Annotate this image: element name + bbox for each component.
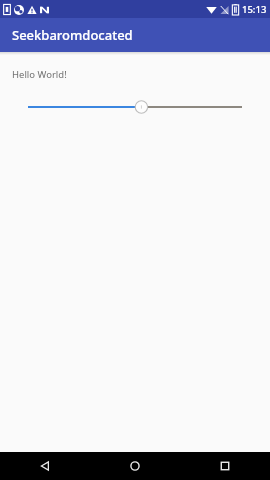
button[interactable] [28,97,242,117]
staticText: 15:13 [242,3,267,16]
staticText: Seekbaromdocated [12,26,133,44]
staticText: Hello World! [12,68,67,81]
button[interactable]: Recent apps [180,452,270,480]
button[interactable]: Home [90,452,180,480]
button[interactable]: Back [0,452,90,480]
